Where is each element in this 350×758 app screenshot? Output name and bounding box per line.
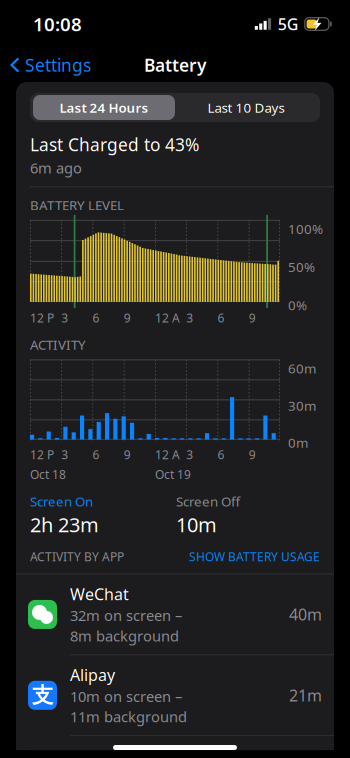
- staticText: 3: [61, 446, 68, 462]
- staticText: Alipay: [70, 664, 115, 685]
- staticText: 50%: [288, 258, 315, 276]
- staticText: 12 P: [30, 446, 54, 462]
- staticText: 40m: [289, 604, 322, 625]
- staticText: 3: [186, 310, 193, 326]
- button[interactable]: WeChat: [16, 574, 334, 654]
- staticText: 2h 23m: [30, 511, 99, 538]
- staticText: Battery: [144, 53, 206, 76]
- staticText: BATTERY LEVEL: [30, 196, 124, 214]
- staticText: SHOW BATTERY USAGE: [189, 549, 320, 565]
- staticText: 12 A: [155, 310, 180, 326]
- button[interactable]: Last 10 Days: [175, 95, 317, 120]
- staticText: 6m ago: [30, 158, 82, 177]
- button[interactable]: Settings: [0, 47, 91, 82]
- staticText: Screen On: [30, 492, 93, 510]
- staticText: ACTIVITY: [30, 336, 86, 353]
- staticText: 21m: [289, 685, 322, 706]
- button[interactable]: SHOW BATTERY USAGE: [189, 549, 320, 565]
- staticText: ACTIVITY BY APP: [30, 549, 124, 565]
- staticText: 10m on screen –: [70, 686, 182, 706]
- button[interactable]: 支: [16, 655, 334, 735]
- staticText: 9: [124, 310, 131, 326]
- staticText: 5G: [278, 13, 299, 35]
- staticText: 30m: [288, 397, 316, 414]
- staticText: 12 A: [155, 446, 180, 462]
- staticText: 12 P: [30, 310, 54, 326]
- staticText: 9: [124, 446, 131, 462]
- button[interactable]: Last 24 Hours: [33, 95, 175, 120]
- staticText: 6: [92, 310, 99, 326]
- staticText: 支: [32, 682, 53, 708]
- staticText: 9: [249, 446, 256, 462]
- staticText: 9: [249, 310, 256, 326]
- staticText: Oct 18: [30, 466, 66, 482]
- staticText: 10m: [176, 511, 217, 538]
- staticText: 6: [92, 446, 99, 462]
- staticText: Oct 19: [155, 466, 191, 482]
- staticText: 10:08: [33, 12, 82, 36]
- staticText: 6: [217, 310, 224, 326]
- staticText: Settings: [25, 53, 91, 76]
- staticText: 0m: [288, 434, 308, 451]
- staticText: Last 24 Hours: [59, 99, 148, 116]
- staticText: WeChat: [70, 583, 129, 604]
- staticText: 6: [217, 446, 224, 462]
- staticText: 8m background: [70, 626, 179, 645]
- staticText: Last Charged to 43%: [30, 133, 199, 156]
- staticText: 100%: [288, 220, 323, 238]
- staticText: Screen Off: [176, 492, 240, 510]
- staticText: 3: [186, 446, 193, 462]
- staticText: 3: [61, 310, 68, 326]
- staticText: 32m on screen –: [70, 606, 182, 625]
- staticText: 60m: [288, 359, 316, 377]
- staticText: 11m background: [70, 707, 187, 726]
- staticText: Last 10 Days: [207, 99, 284, 116]
- staticText: 0%: [288, 296, 307, 314]
